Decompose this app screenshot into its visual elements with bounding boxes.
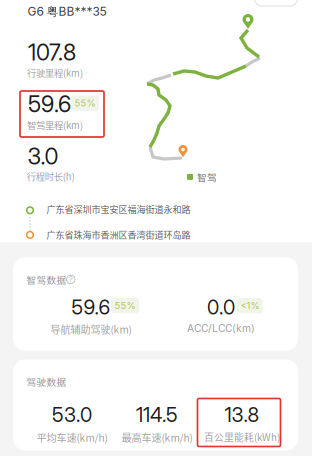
staticText: 107.8 [28,38,76,66]
staticText: 114.5 [136,402,178,427]
staticText: 55% [74,97,95,109]
staticText: ? [69,275,73,284]
staticText: 智驾 [197,170,217,184]
staticText: 百公里能耗(kWh) [204,430,280,444]
staticText: 导航辅助驾驶(km) [50,322,131,336]
staticText: 最高车速(km/h) [121,430,192,445]
staticText: 智驾里程(km) [27,118,83,132]
staticText: G6 粤BB***35 [27,4,106,19]
staticText: 广东省深圳市宝安区福海街道永和路 [46,202,190,215]
staticText: 3.0 [28,143,59,170]
staticText: 驾驶数据 [26,374,66,388]
staticText: 平均车速(km/h) [36,430,107,445]
staticText: 59.6 [28,90,71,118]
staticText: 53.0 [52,402,92,427]
staticText: 行驶里程(km) [27,66,83,79]
staticText: 行程时长(h) [27,169,75,183]
staticText: 55% [114,300,135,311]
staticText: 59.6 [71,295,110,319]
staticText: 0.0 [207,295,235,319]
staticText: <1% [240,300,259,311]
staticText: 广东省珠海市香洲区香湾街道环岛路 [46,228,190,241]
staticText: 智驾数据 [26,272,66,286]
staticText: ACC/LCC(km) [187,322,255,334]
staticText: 13.8 [224,402,259,427]
